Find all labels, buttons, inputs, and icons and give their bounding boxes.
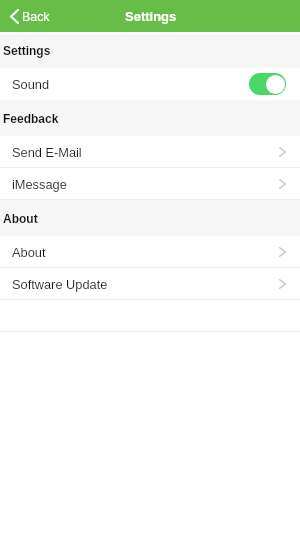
staticText: Settings <box>125 9 177 24</box>
staticText: About <box>3 212 38 225</box>
button[interactable]: Send E-Mail <box>0 136 300 168</box>
button[interactable]: Sound toggle <box>249 73 286 95</box>
button[interactable]: Back <box>0 9 56 24</box>
staticText: Feedback <box>3 112 59 125</box>
staticText: Back <box>22 10 50 24</box>
button[interactable]: Software Update <box>0 268 300 300</box>
button[interactable]: About <box>0 236 300 268</box>
button[interactable]: iMessage <box>0 168 300 200</box>
staticText: Software Update <box>12 277 108 291</box>
staticText: Send E-Mail <box>12 145 82 159</box>
staticText: Sound <box>12 77 50 91</box>
staticText: iMessage <box>12 177 67 191</box>
staticText: About <box>12 245 46 259</box>
staticText: Settings <box>3 44 51 57</box>
